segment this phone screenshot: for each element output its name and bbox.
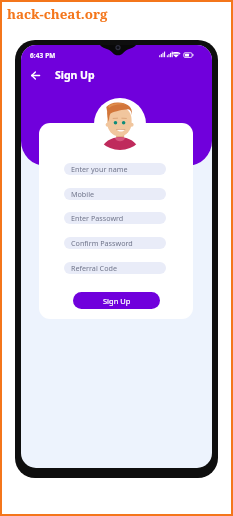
staticText: Sign Up <box>55 68 95 82</box>
staticText: Referral Code <box>71 263 117 273</box>
staticText: 6:43 PM <box>30 51 56 60</box>
button[interactable]: Sign Up <box>73 292 160 309</box>
button[interactable]: Enter Passowrd <box>64 212 166 224</box>
staticText: hack-cheat.org <box>7 5 108 23</box>
button[interactable]: Enter your name <box>64 163 166 175</box>
staticText: Enter your name <box>71 164 128 174</box>
button[interactable]: Back <box>27 67 43 83</box>
staticText: Enter Passowrd <box>71 213 124 223</box>
button[interactable]: Confirm Password <box>64 237 166 249</box>
staticText: Sign Up <box>103 296 131 306</box>
button[interactable]: Mobile <box>64 188 166 200</box>
staticText: Mobile <box>71 189 95 199</box>
staticText: Confirm Password <box>71 238 133 248</box>
button[interactable]: Referral Code <box>64 262 166 274</box>
